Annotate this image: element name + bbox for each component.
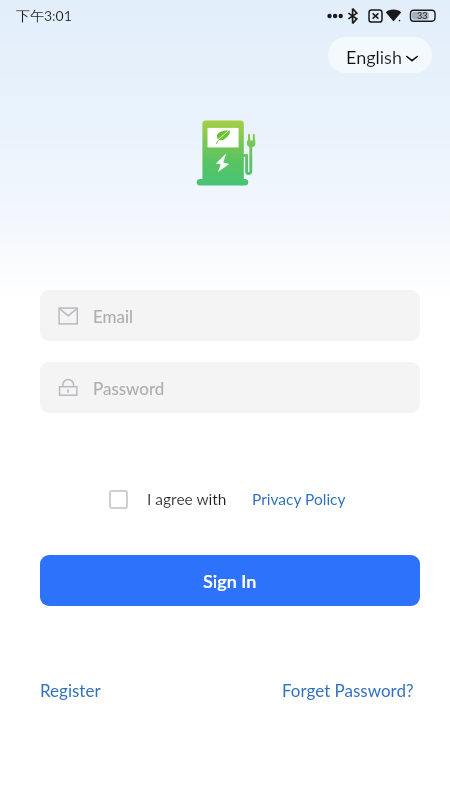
- staticText: Forget Password?: [282, 680, 414, 700]
- button[interactable]: Password: [40, 362, 420, 413]
- button[interactable]: Register: [40, 680, 101, 700]
- button[interactable]: Email: [40, 290, 420, 341]
- staticText: Password: [93, 378, 165, 398]
- staticText: Email: [93, 306, 134, 326]
- button[interactable]: I agree checkbox: [109, 490, 128, 509]
- staticText: Register: [40, 680, 101, 700]
- button[interactable]: Forget Password?: [282, 680, 414, 700]
- button[interactable]: Privacy Policy: [252, 490, 346, 509]
- staticText: Sign In: [203, 570, 257, 592]
- staticText: Privacy Policy: [252, 490, 346, 509]
- staticText: 下午3:01: [16, 7, 72, 25]
- button[interactable]: English: [328, 37, 432, 73]
- staticText: 33: [417, 10, 428, 21]
- staticText: English: [346, 46, 402, 68]
- staticText: I agree with: [147, 490, 227, 509]
- button[interactable]: Sign In: [40, 555, 420, 606]
